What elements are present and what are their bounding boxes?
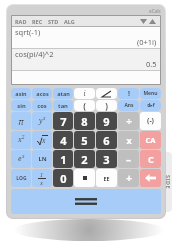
button[interactable]: y to the power x [32,112,52,130]
button[interactable]: Decimal point [74,169,95,187]
button[interactable]: sqrt(-1) [12,27,160,48]
staticText: LOG [16,175,27,182]
button[interactable]: ALG [64,18,75,25]
staticText: sin [17,102,26,110]
button[interactable]: tan [53,100,73,111]
button[interactable]: Square root [32,131,52,149]
button[interactable]: STD [48,18,59,25]
staticText: 0.5 [146,59,157,69]
staticText: ) [105,100,108,111]
button[interactable]: Side bar [158,152,172,212]
staticText: (-) [147,116,154,126]
staticText: (0+1i) [137,37,157,47]
staticText: i [83,89,86,99]
button[interactable]: i [74,88,95,99]
staticText: LN [38,155,47,163]
staticText: 1 [40,171,44,178]
button[interactable]: LN [32,150,52,168]
staticText: Ans [124,102,134,109]
button[interactable]: e to the power x [11,150,31,168]
button[interactable]: x [118,131,139,149]
staticText: asin [15,90,27,97]
button[interactable]: 7 [53,112,73,130]
button[interactable]: acos [32,88,52,99]
staticText: 3 [103,152,110,167]
button[interactable]: RAD [15,18,27,25]
button[interactable]: – [118,150,139,168]
staticText: 7 [60,114,67,129]
button[interactable]: ( [74,100,95,111]
staticText: 5 [81,133,88,148]
button[interactable]: atan [53,88,73,99]
button[interactable]: ) [96,100,117,111]
button[interactable]: LOG [11,169,31,187]
staticText: – [126,152,131,166]
button[interactable]: REC [32,18,43,25]
staticText: tan [58,102,68,110]
button[interactable]: C [140,150,161,168]
staticText: C [148,153,154,165]
button[interactable]: CA [140,131,161,149]
button[interactable]: One over x [32,169,52,187]
button[interactable]: 8 [74,112,95,130]
button[interactable]: EE [96,169,117,187]
staticText: eCalc [149,8,161,14]
staticText: REC [32,18,43,25]
staticText: acos [36,90,49,97]
button[interactable]: 2 [74,150,95,168]
button[interactable]: π [11,112,31,130]
button[interactable]: Equals [11,189,161,214]
staticText: sqrt(-1) [15,27,41,37]
button[interactable]: 5 [74,131,95,149]
staticText: x [40,179,44,186]
staticText: 6 [103,133,110,148]
staticText: 8 [81,114,88,129]
button[interactable]: + [118,169,139,187]
staticText: cos(pi/4)^2 [15,49,54,59]
staticText: ALG [64,18,75,25]
staticText: y [39,116,43,126]
button[interactable]: Ans [118,100,139,111]
button[interactable]: d▸f [140,100,161,111]
button[interactable]: ÷ [118,112,139,130]
staticText: ! [128,89,130,99]
staticText: cos [37,102,47,110]
button[interactable]: Scroll down [139,17,148,26]
button[interactable]: 1 [53,150,73,168]
button[interactable]: 4 [53,131,73,149]
button[interactable]: 6 [96,131,117,149]
button[interactable]: 9 [96,112,117,130]
staticText: 4 [60,133,67,148]
button[interactable]: sin [11,100,31,111]
button[interactable]: cos(pi/4)^2 [12,49,160,70]
staticText: SIDE BAR [158,175,172,189]
button[interactable]: (-) [140,112,161,130]
staticText: RAD [15,18,27,25]
button[interactable]: cos [32,100,52,111]
staticText: e [18,154,22,164]
button[interactable]: x squared [11,131,31,149]
staticText: atan [57,90,70,97]
button[interactable]: 0 [53,169,73,187]
staticText: d▸f [147,102,155,109]
button[interactable]: asin [11,88,31,99]
staticText: CA [145,135,156,145]
staticText: x [42,136,46,145]
button[interactable]: Backspace [140,169,161,187]
staticText: x [18,135,22,145]
button[interactable]: Angle [96,88,117,99]
staticText: x [126,134,132,146]
staticText: + [126,171,132,185]
button[interactable]: ! [118,88,139,99]
staticText: x [22,153,25,159]
button[interactable]: Menu [140,88,161,99]
button[interactable]: 3 [96,150,117,168]
staticText: STD [48,18,59,25]
button[interactable]: Scroll up [148,17,157,26]
staticText: 9 [103,114,110,129]
staticText: 2 [22,134,25,140]
staticText: 0 [60,171,67,186]
staticText: ÷ [126,114,132,128]
staticText: Menu [143,90,158,97]
